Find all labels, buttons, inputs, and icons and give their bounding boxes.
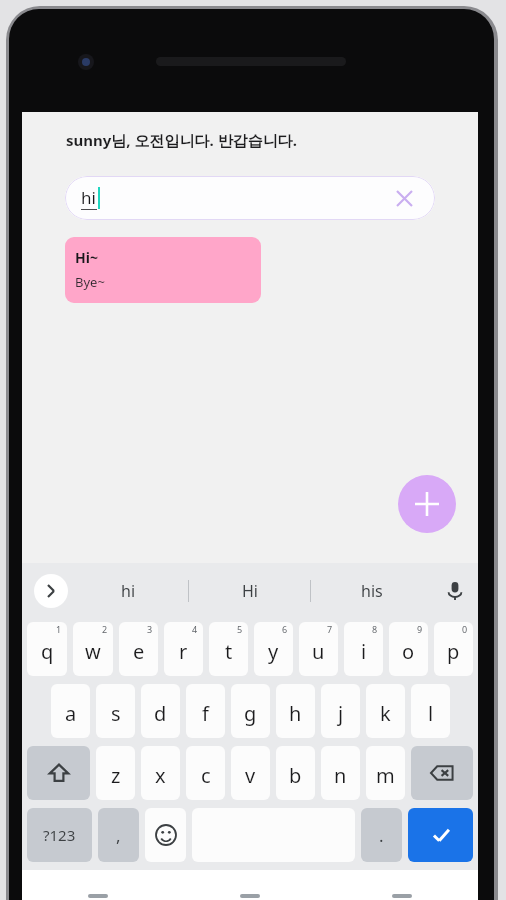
button[interactable]: hi (68, 563, 188, 619)
button[interactable]: k (366, 684, 405, 738)
button[interactable]: Home (174, 870, 326, 900)
staticText: Hi~ (75, 248, 98, 267)
staticText: o (402, 638, 415, 665)
button[interactable]: w (73, 622, 113, 676)
staticText: hi (121, 580, 136, 602)
staticText: his (361, 580, 383, 602)
button[interactable]: u (299, 622, 338, 676)
button[interactable]: Clear text (389, 183, 419, 213)
button[interactable]: c (186, 746, 225, 800)
staticText: 0 (462, 623, 468, 635)
staticText: 4 (192, 623, 198, 635)
button[interactable]: Add (398, 475, 456, 533)
button[interactable]: h (276, 684, 315, 738)
staticText: 3 (147, 623, 153, 635)
button[interactable]: v (231, 746, 270, 800)
button[interactable]: Voice input (432, 563, 478, 619)
button[interactable]: g (231, 684, 270, 738)
staticText: 2 (102, 623, 108, 635)
button[interactable]: More suggestions (34, 574, 68, 608)
staticText: Hi (242, 580, 258, 602)
button[interactable]: y (254, 622, 293, 676)
staticText: ?123 (43, 825, 76, 845)
button[interactable]: o (389, 622, 428, 676)
button[interactable]: Hi~ (65, 237, 261, 303)
button[interactable]: e (119, 622, 158, 676)
button[interactable]: i (344, 622, 383, 676)
staticText: hi (81, 186, 96, 209)
staticText: 1 (56, 623, 62, 635)
button[interactable]: , (98, 808, 139, 862)
staticText: p (447, 638, 460, 665)
button[interactable]: d (141, 684, 180, 738)
staticText: q (41, 638, 54, 665)
staticText: l (428, 700, 434, 727)
staticText: 8 (372, 623, 378, 635)
button[interactable]: Recents (326, 870, 478, 900)
staticText: m (376, 762, 395, 789)
staticText: z (111, 762, 121, 789)
staticText: . (379, 824, 384, 847)
staticText: j (338, 700, 344, 727)
button[interactable]: l (411, 684, 450, 738)
button[interactable]: Back (22, 870, 174, 900)
staticText: t (225, 638, 233, 665)
button[interactable]: a (51, 684, 90, 738)
staticText: w (85, 638, 101, 665)
button[interactable]: Backspace (411, 746, 473, 800)
button[interactable]: b (276, 746, 315, 800)
staticText: k (380, 700, 391, 727)
staticText: x (155, 762, 166, 789)
button[interactable]: p (434, 622, 473, 676)
staticText: b (289, 762, 302, 789)
staticText: y (268, 638, 279, 665)
staticText: sunny님, 오전입니다. 반갑습니다. (66, 130, 297, 150)
staticText: v (245, 762, 256, 789)
staticText: 5 (237, 623, 243, 635)
staticText: 9 (417, 623, 423, 635)
button[interactable]: s (96, 684, 135, 738)
button[interactable]: hi (65, 176, 435, 220)
staticText: i (361, 638, 367, 665)
button[interactable]: q (27, 622, 67, 676)
button[interactable]: r (164, 622, 203, 676)
button[interactable]: Hi (189, 563, 310, 619)
button[interactable]: his (311, 563, 432, 619)
staticText: e (133, 638, 145, 665)
button[interactable]: j (321, 684, 360, 738)
staticText: f (202, 700, 209, 727)
staticText: 6 (282, 623, 288, 635)
button[interactable]: t (209, 622, 248, 676)
staticText: d (154, 700, 167, 727)
button[interactable]: m (366, 746, 405, 800)
staticText: g (244, 700, 257, 727)
button[interactable]: . (361, 808, 402, 862)
staticText: c (201, 762, 211, 789)
staticText: s (111, 700, 121, 727)
button[interactable]: z (96, 746, 135, 800)
button[interactable]: Emoji (145, 808, 186, 862)
button[interactable]: f (186, 684, 225, 738)
staticText: Bye~ (75, 273, 105, 291)
staticText: 7 (327, 623, 333, 635)
staticText: r (179, 638, 188, 665)
staticText: n (334, 762, 347, 789)
button[interactable]: Enter (408, 808, 473, 862)
staticText: h (289, 700, 302, 727)
button[interactable]: n (321, 746, 360, 800)
staticText: , (116, 824, 121, 847)
button[interactable]: x (141, 746, 180, 800)
button[interactable]: Shift (27, 746, 90, 800)
staticText: a (65, 700, 77, 727)
button[interactable]: ?123 (27, 808, 92, 862)
staticText: u (312, 638, 325, 665)
